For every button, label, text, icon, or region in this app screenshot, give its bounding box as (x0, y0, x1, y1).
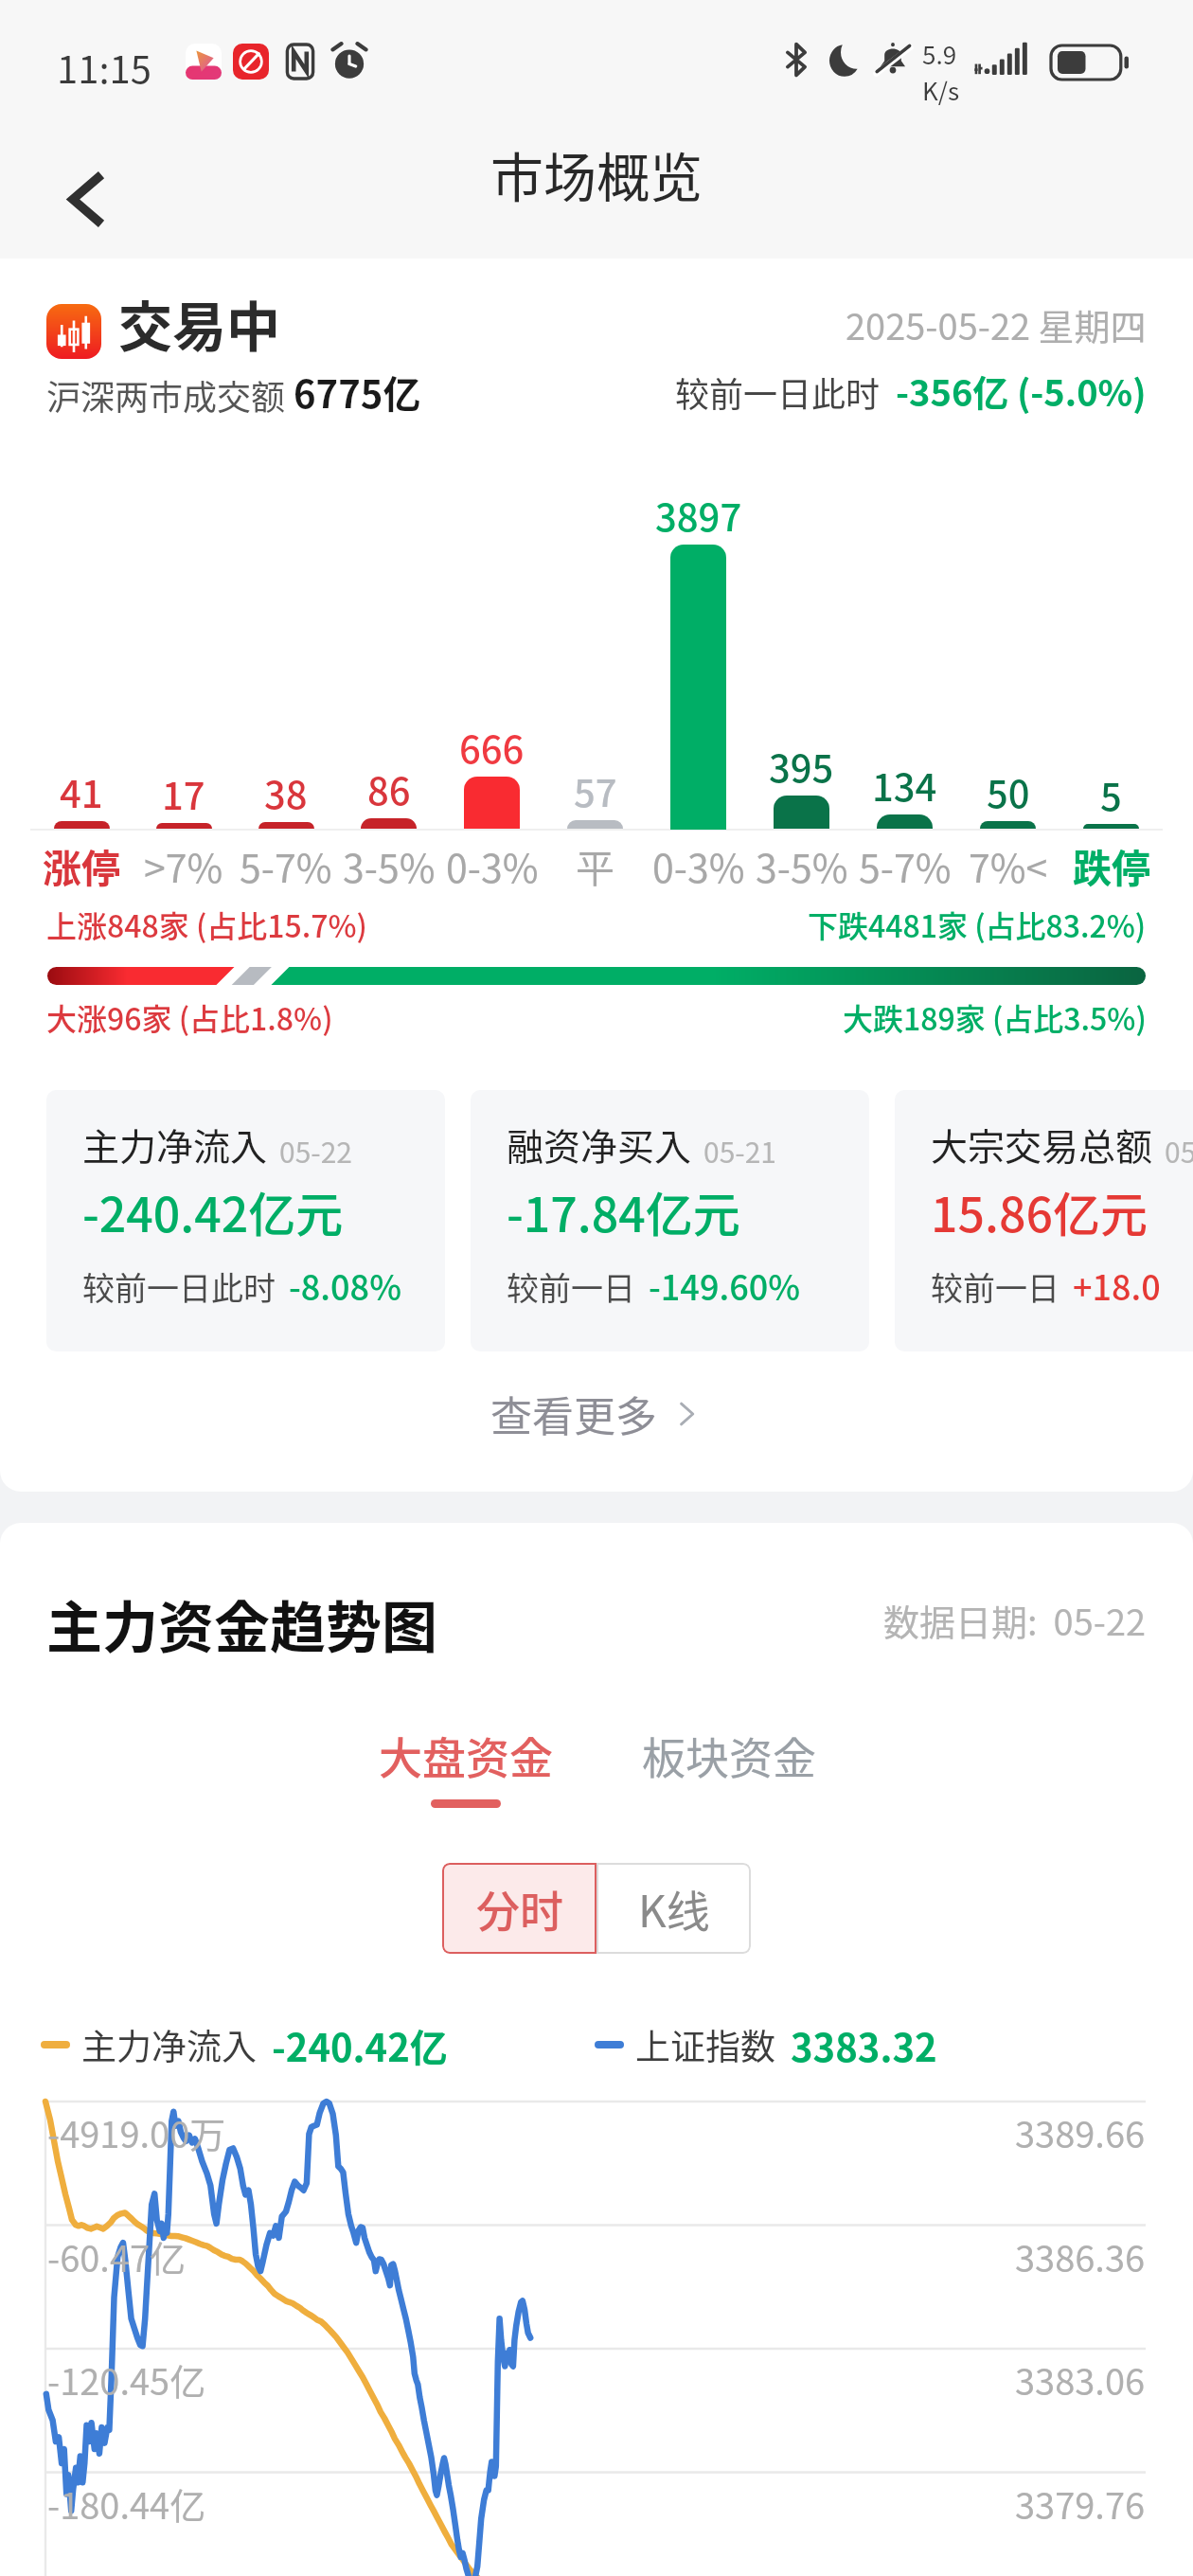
staticText: 下跌4481家 (占比83.2%) (808, 903, 1147, 946)
staticText: 0-3% (446, 837, 539, 893)
staticText: 涨停 (43, 837, 120, 893)
staticText: 05-22 (1165, 1130, 1193, 1171)
staticText: 交易中 (118, 284, 280, 363)
staticText: 较前一日此时 (82, 1263, 276, 1310)
staticText: 05-21 (703, 1130, 777, 1171)
staticText: 11:15 (57, 40, 151, 95)
staticText: 57 (574, 763, 617, 818)
staticText: 较前一日 (507, 1263, 635, 1310)
staticText: 主力净流入 (82, 1118, 268, 1171)
staticText: 0-3% (652, 837, 745, 893)
staticText: 666 (459, 720, 525, 775)
staticText: 上涨848家 (占比15.7%) (46, 903, 368, 946)
staticText: 融资净买入 (507, 1118, 692, 1171)
staticText: -149.60% (649, 1261, 800, 1310)
staticText: 分时 (476, 1877, 563, 1941)
staticText: 6775亿 (294, 365, 421, 420)
staticText: -8.08% (289, 1261, 401, 1310)
staticText: 较前一日 (931, 1263, 1059, 1310)
staticText: 较前一日此时 (675, 367, 896, 417)
staticText: 38 (264, 765, 308, 820)
staticText: 大宗交易总额 (931, 1118, 1153, 1171)
button[interactable]: K线 (596, 1863, 751, 1954)
staticText: K线 (638, 1877, 710, 1941)
staticText: 大跌189家 (占比3.5%) (843, 995, 1147, 1039)
button[interactable]: 主力净流入 (46, 1090, 445, 1351)
staticText: -356亿 (-5.0%) (896, 365, 1147, 417)
button[interactable]: Back (44, 155, 129, 241)
staticText: 41 (60, 764, 103, 819)
staticText: 5 (1100, 767, 1122, 822)
staticText: +18.0 (1073, 1261, 1161, 1310)
staticText: >7% (144, 837, 223, 893)
staticText: 7%< (969, 837, 1048, 893)
staticText: 沪深两市成交额 (46, 370, 294, 420)
staticText: 数据日期: 05-22 (883, 1594, 1147, 1646)
button[interactable]: 大盘资金 (352, 1724, 579, 1830)
staticText: -180.44亿 (47, 2478, 206, 2530)
staticText: 86 (367, 761, 411, 816)
button[interactable]: 分时 (442, 1863, 596, 1954)
staticText: -240.42亿 (272, 2018, 448, 2071)
staticText: -17.84亿元 (507, 1177, 740, 1245)
button[interactable]: 查看更多 (0, 1376, 1193, 1452)
staticText: 平 (576, 837, 614, 893)
button[interactable]: 板块资金 (615, 1724, 843, 1830)
staticText: 3383.06 (1015, 2353, 1146, 2406)
staticText: 3383.32 (791, 2018, 937, 2071)
staticText: -240.42亿元 (82, 1177, 344, 1245)
staticText: 主力净流入 (81, 2019, 257, 2070)
button[interactable]: 大宗交易总额 (895, 1090, 1193, 1351)
staticText: 3386.36 (1015, 2230, 1146, 2282)
staticText: 板块资金 (642, 1724, 816, 1787)
staticText: 3897 (655, 488, 742, 543)
staticText: -60.47亿 (47, 2230, 187, 2282)
staticText: 5-7% (240, 837, 332, 893)
staticText: 05-22 (279, 1130, 353, 1171)
staticText: 大盘资金 (379, 1724, 553, 1787)
staticText: 17 (162, 766, 205, 821)
staticText: 查看更多 (490, 1384, 657, 1444)
staticText: -4919.00万 (47, 2106, 226, 2158)
staticText: 2025-05-22 星期四 (846, 298, 1147, 350)
staticText: 大涨96家 (占比1.8%) (46, 995, 333, 1039)
staticText: 3389.66 (1015, 2106, 1146, 2158)
staticText: 395 (769, 739, 834, 794)
staticText: 3-5% (756, 837, 848, 893)
staticText: K/s (922, 72, 960, 108)
staticText: -120.45亿 (47, 2353, 206, 2406)
staticText: 15.86亿元 (931, 1177, 1148, 1245)
staticText: 5-7% (859, 837, 952, 893)
staticText: 主力资金趋势图 (46, 1583, 438, 1664)
staticText: 上证指数 (635, 2019, 775, 2070)
staticText: 50 (987, 764, 1030, 819)
staticText: 134 (872, 758, 937, 813)
staticText: 3-5% (343, 837, 436, 893)
staticText: 5.9 (922, 36, 957, 72)
button[interactable]: 融资净买入 (471, 1090, 869, 1351)
staticText: 跌停 (1073, 837, 1150, 893)
staticText: 市场概览 (490, 135, 703, 212)
staticText: 3379.76 (1015, 2478, 1146, 2530)
